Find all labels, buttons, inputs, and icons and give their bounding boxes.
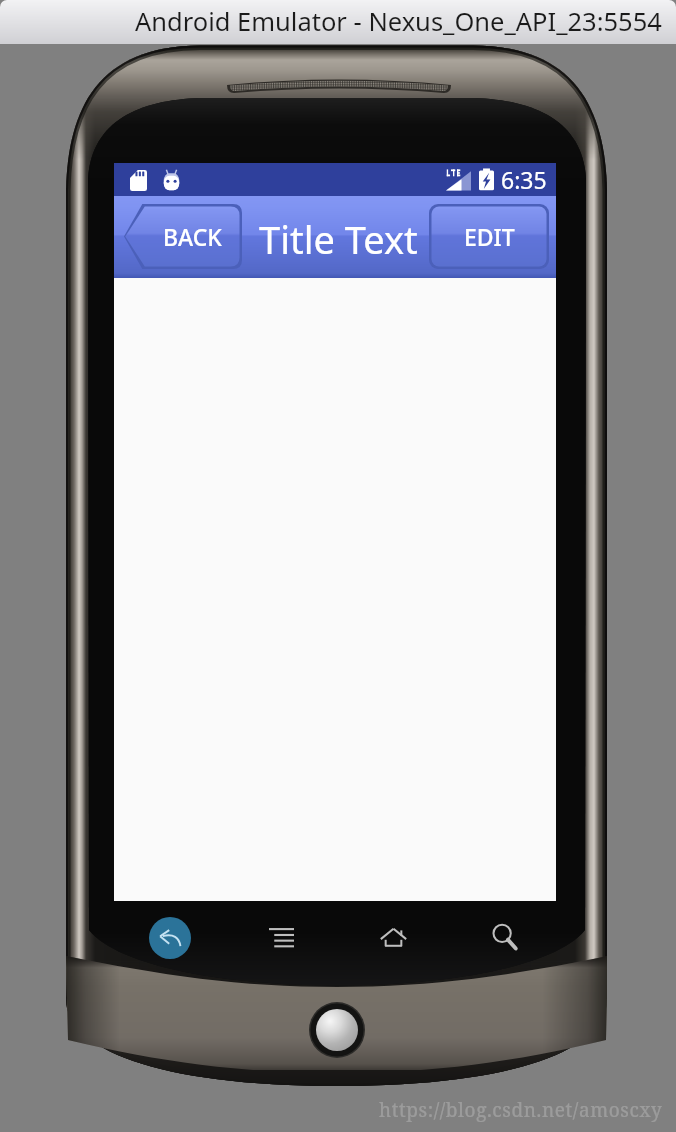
staticText: Title Text (259, 213, 418, 265)
staticText: https://blog.csdn.net/amoscxy (379, 1097, 663, 1123)
button[interactable]: Home (369, 913, 417, 961)
button[interactable]: Search (481, 913, 529, 961)
staticText: Android Emulator - Nexus_One_API_23:5554 (135, 4, 662, 39)
button[interactable]: Back (149, 917, 191, 959)
staticText: EDIT (464, 221, 515, 252)
button[interactable]: Menu (257, 913, 305, 961)
button[interactable]: EDIT (429, 204, 549, 269)
staticText: 6:35 (501, 164, 547, 195)
staticText: BACK (163, 221, 222, 252)
button[interactable]: BACK (124, 204, 242, 269)
